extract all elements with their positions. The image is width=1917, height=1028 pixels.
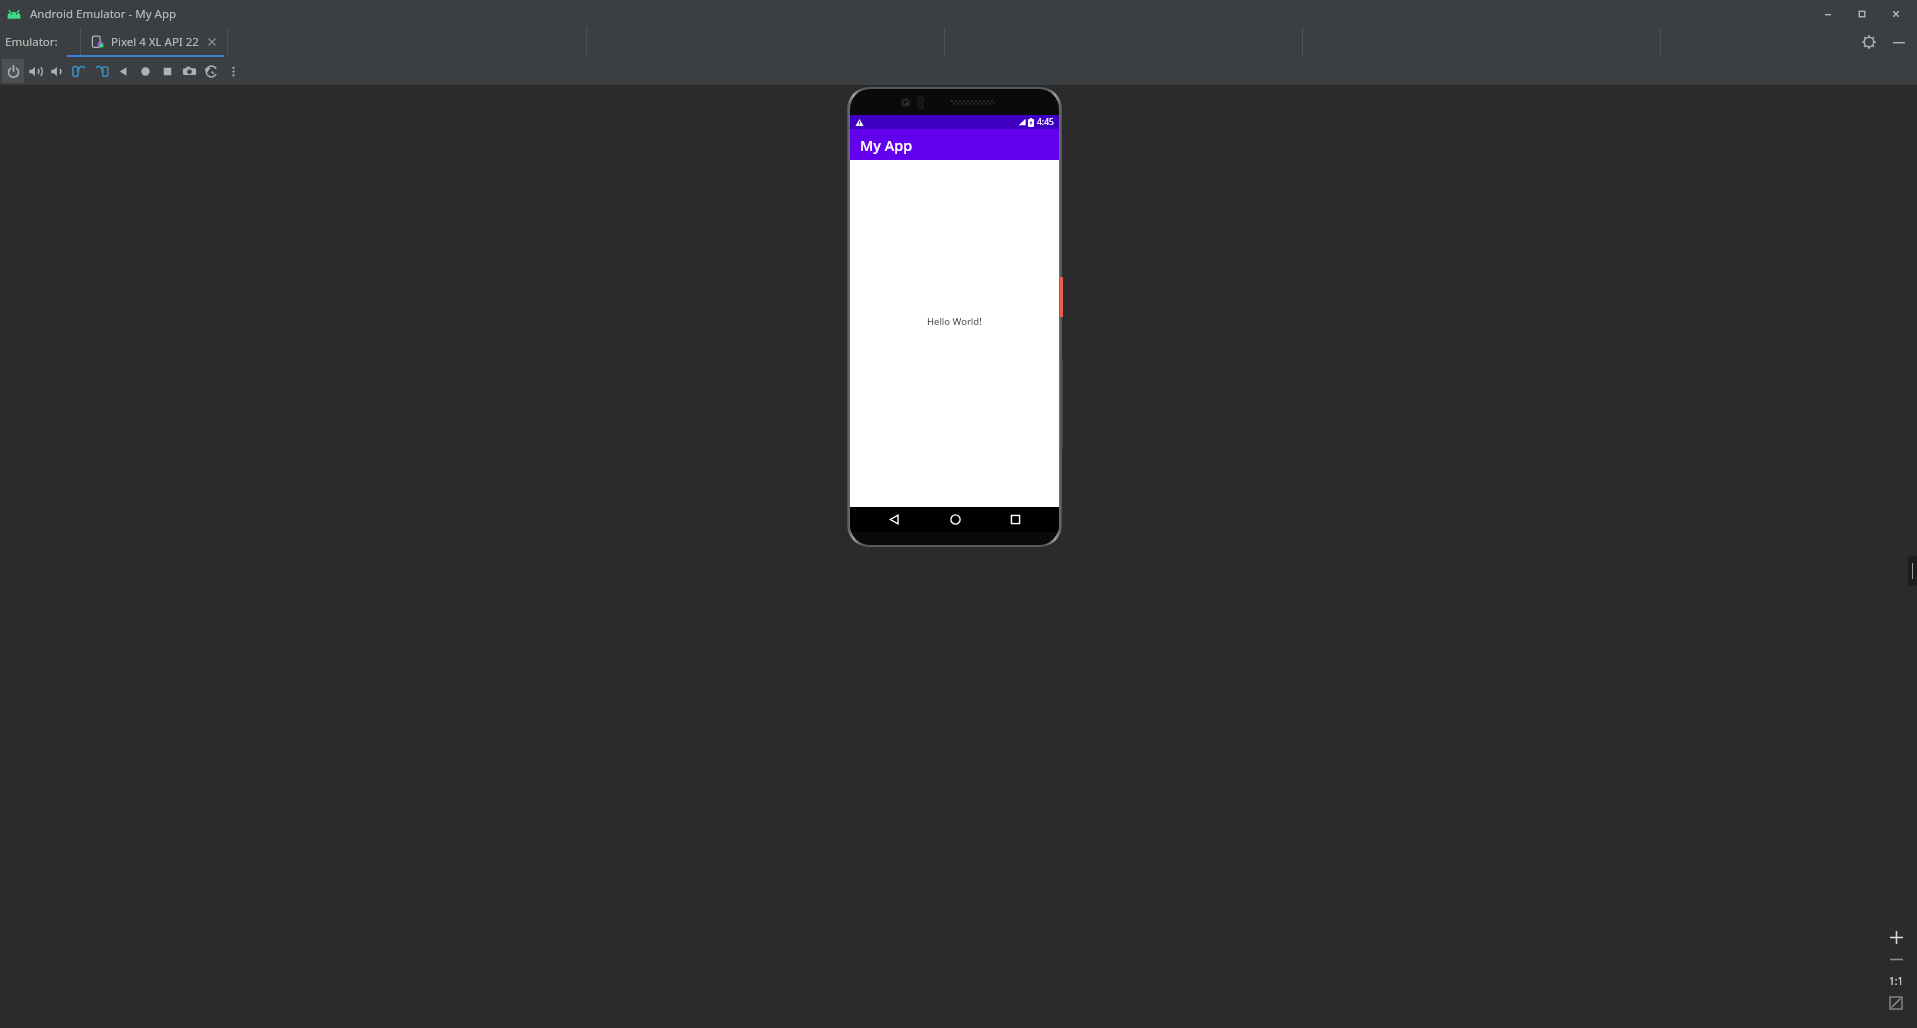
button[interactable]: Record bbox=[134, 59, 156, 83]
button[interactable]: More bbox=[222, 59, 244, 83]
staticText: My App bbox=[860, 135, 913, 155]
button[interactable]: Settings bbox=[1857, 30, 1881, 54]
staticText: Android Emulator - My App bbox=[30, 6, 177, 22]
button[interactable]: Back bbox=[112, 59, 134, 83]
button[interactable]: Extended controls bbox=[1908, 556, 1917, 586]
staticText: 4:45 bbox=[1037, 116, 1054, 128]
button[interactable]: Rotate right bbox=[90, 59, 112, 83]
button[interactable]: History bbox=[200, 59, 222, 83]
button[interactable]: Hide bbox=[1887, 30, 1911, 54]
button[interactable]: Close tab bbox=[207, 37, 217, 47]
button[interactable]: Zoom out bbox=[1885, 948, 1907, 970]
button[interactable]: Maximize bbox=[1845, 2, 1879, 26]
button[interactable]: Rotate left bbox=[68, 59, 90, 83]
button[interactable]: Pixel 4 XL API 22 bbox=[81, 27, 227, 57]
button[interactable]: Fit to window bbox=[1885, 992, 1907, 1014]
button[interactable]: Recents bbox=[998, 507, 1032, 532]
button[interactable]: Volume down bbox=[46, 59, 68, 83]
staticText: 1:1 bbox=[1889, 974, 1904, 988]
button[interactable]: 1:1 bbox=[1885, 970, 1907, 992]
button[interactable]: Stop bbox=[156, 59, 178, 83]
staticText: Emulator: bbox=[5, 34, 58, 50]
button[interactable]: Home bbox=[938, 507, 972, 532]
button[interactable]: Back bbox=[877, 507, 911, 532]
button[interactable]: Screenshot bbox=[178, 59, 200, 83]
button[interactable]: Minimize bbox=[1811, 2, 1845, 26]
staticText: Hello World! bbox=[927, 315, 982, 328]
button[interactable]: Zoom in bbox=[1885, 926, 1907, 948]
button[interactable]: Close bbox=[1879, 2, 1913, 26]
button[interactable]: Power bbox=[2, 59, 24, 83]
button[interactable]: Volume up bbox=[24, 59, 46, 83]
staticText: Pixel 4 XL API 22 bbox=[111, 34, 199, 50]
